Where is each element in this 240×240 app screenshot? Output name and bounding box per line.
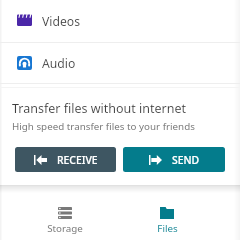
staticText: Transfer files without internet [12, 100, 187, 117]
staticText: RECEIVE [57, 153, 98, 167]
button[interactable]: Audio [0, 43, 240, 83]
staticText: Videos [42, 13, 81, 30]
staticText: High speed transfer files to your friend… [12, 120, 195, 133]
staticText: Audio [42, 55, 76, 72]
button[interactable]: SEND [123, 147, 225, 172]
button[interactable]: RECEIVE [15, 147, 116, 172]
button[interactable]: Videos [0, 0, 240, 42]
button[interactable]: Files [117, 186, 217, 240]
staticText: Files [157, 222, 178, 235]
button[interactable]: Storage [15, 186, 115, 240]
staticText: Storage [47, 222, 83, 235]
staticText: SEND [172, 153, 200, 167]
